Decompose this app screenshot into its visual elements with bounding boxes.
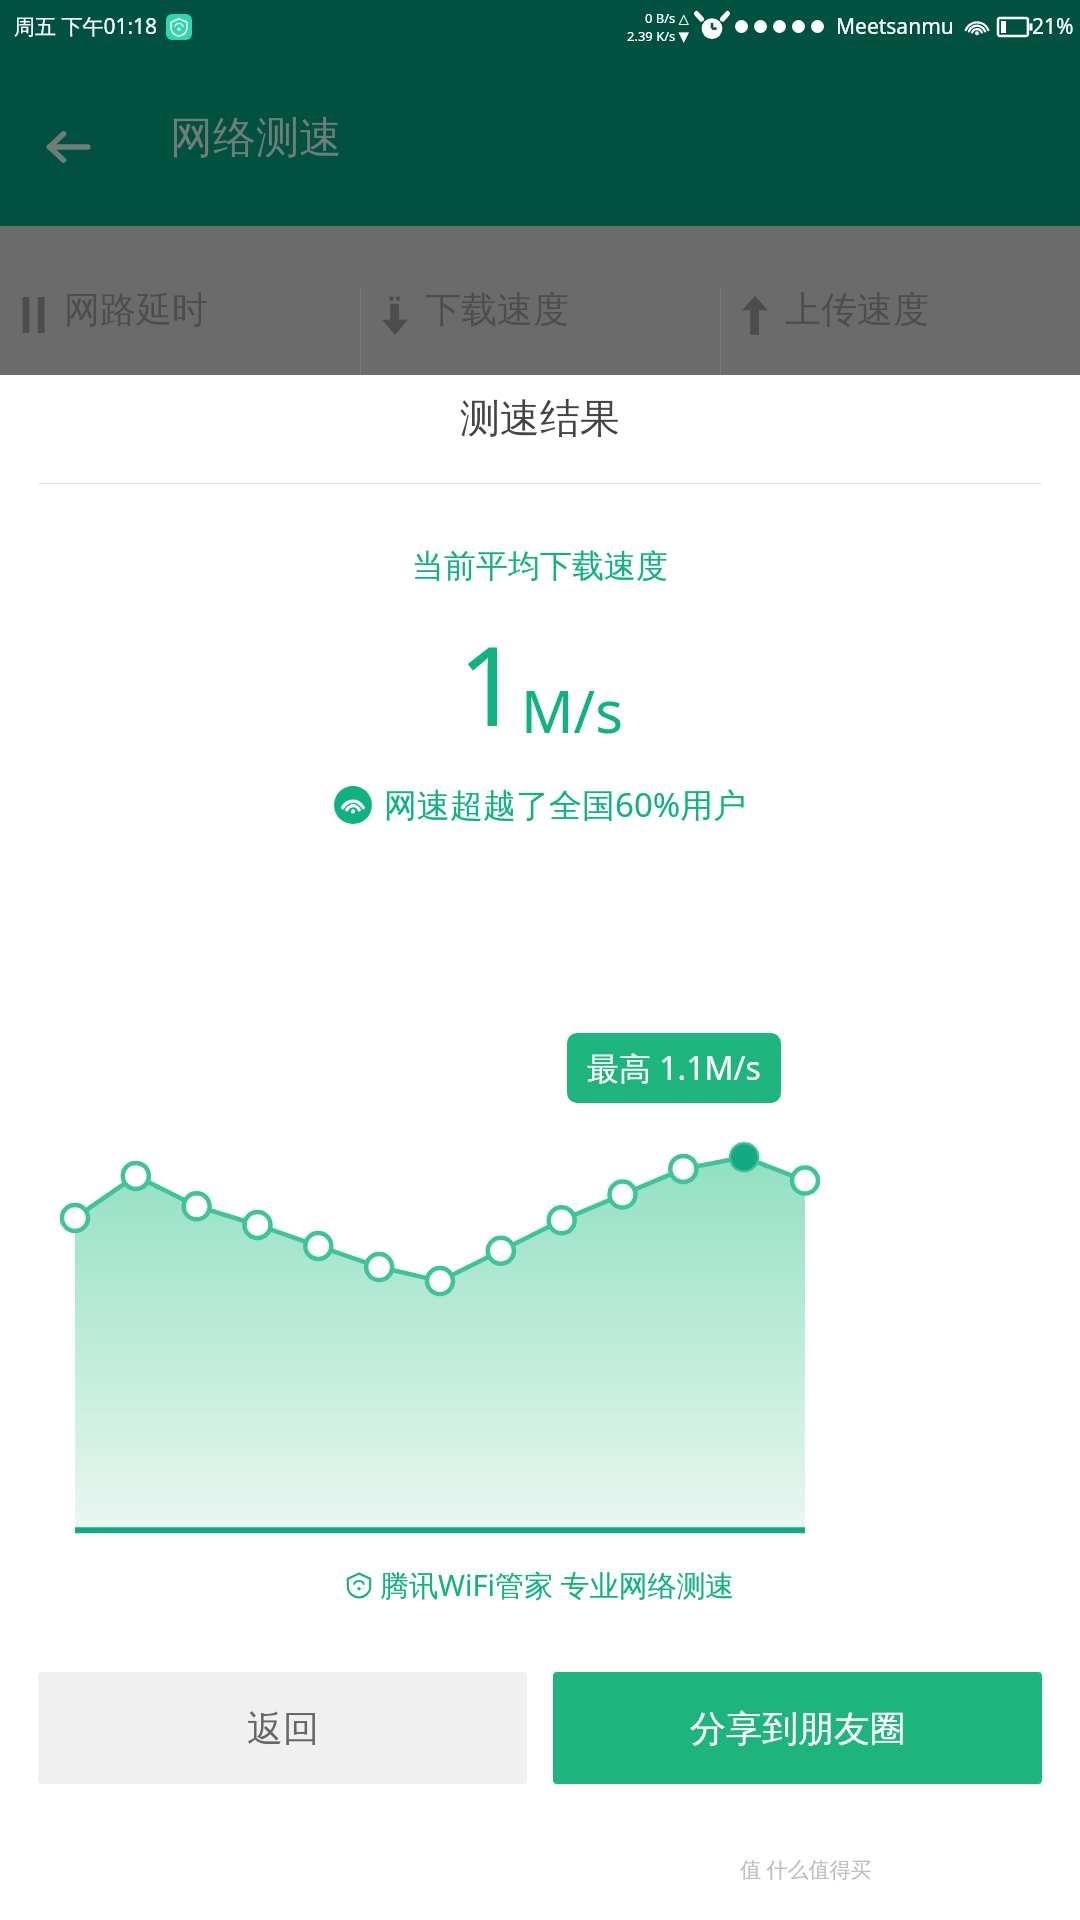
button[interactable]: 上传速度 <box>721 275 1080 375</box>
staticText: 周五 下午01:18 <box>14 12 158 41</box>
staticText: 分享到朋友圈 <box>690 1706 906 1751</box>
staticText: 返回 <box>247 1706 319 1751</box>
staticText: 0 B/s △ <box>645 9 689 27</box>
button[interactable]: 返回 <box>38 1672 527 1784</box>
staticText: 最高 1.1M/s <box>587 1046 761 1090</box>
button[interactable]: 下载速度 <box>361 275 720 375</box>
staticText: Meetsanmu <box>836 12 954 41</box>
button[interactable]: Back <box>36 115 100 179</box>
staticText: 下载速度 <box>425 287 569 332</box>
staticText: 网速超越了全国60%用户 <box>384 782 747 827</box>
staticText: 上传速度 <box>785 287 929 332</box>
staticText: 网路延时 <box>64 287 208 332</box>
staticText: 1 <box>458 608 521 758</box>
staticText: 值 什么值得买 <box>740 1855 872 1884</box>
staticText: 当前平均下载速度 <box>0 546 1080 586</box>
staticText: 腾讯WiFi管家 专业网络测速 <box>380 1565 735 1605</box>
staticText: 测速结果 <box>0 393 1080 443</box>
button[interactable]: 分享到朋友圈 <box>553 1672 1042 1784</box>
staticText: M/s <box>521 671 623 750</box>
staticText: 21% <box>1032 12 1074 41</box>
button[interactable]: 网路延时 <box>0 275 360 375</box>
staticText: 网络测速 <box>170 111 342 165</box>
staticText: 2.39 K/s ▼ <box>627 27 689 45</box>
